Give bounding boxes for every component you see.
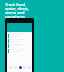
button[interactable] — [7, 38, 32, 43]
button[interactable]: Nav 1 — [13, 65, 17, 69]
button[interactable]: Nav 3 — [22, 65, 26, 69]
button[interactable] — [7, 48, 32, 53]
button[interactable]: Nav 2 — [18, 65, 22, 69]
button[interactable]: Nav 0 — [8, 65, 12, 69]
button[interactable]: Nav 4 — [27, 65, 31, 69]
button[interactable] — [7, 43, 32, 48]
staticText: Track food, water, sleep, stress and sym… — [5, 2, 35, 19]
button[interactable] — [7, 33, 32, 38]
